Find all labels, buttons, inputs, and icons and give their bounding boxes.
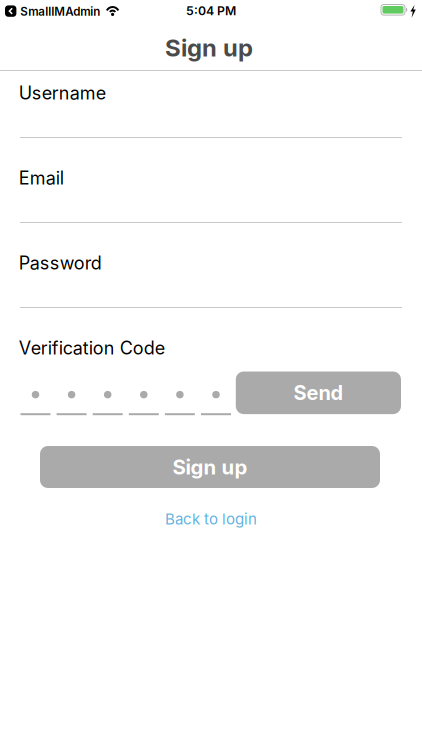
button[interactable]: Sign up	[40, 446, 380, 488]
staticText: SmallIMAdmin	[20, 5, 100, 19]
staticText: Sign up	[172, 455, 247, 479]
staticText: Password	[19, 252, 102, 274]
button[interactable]: Back to SmallIMAdmin	[0, 0, 100, 22]
button[interactable]: Back to login	[165, 510, 257, 528]
staticText: Username	[19, 82, 106, 104]
staticText: Send	[293, 381, 343, 405]
staticText: Email	[19, 167, 64, 189]
button[interactable]: Send	[236, 371, 401, 414]
staticText: Verification Code	[19, 337, 165, 359]
staticText: 5:04 PM	[186, 3, 236, 18]
staticText: Back to login	[165, 510, 257, 528]
staticText: Sign up	[165, 33, 253, 62]
